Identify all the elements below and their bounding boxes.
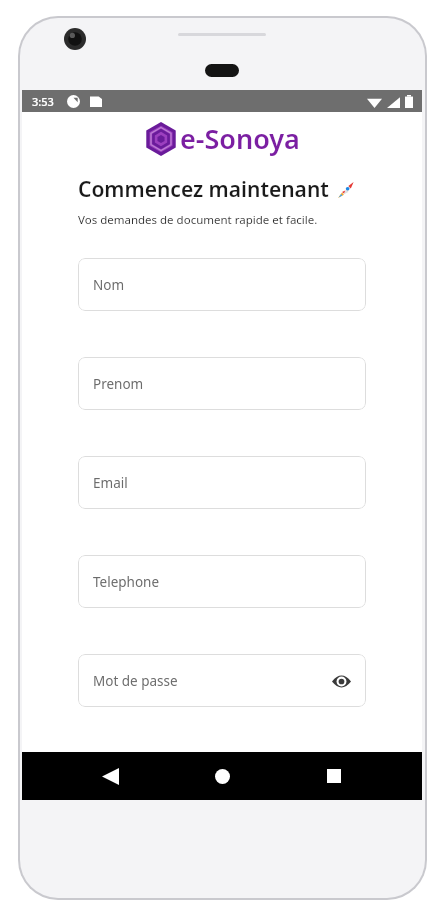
button[interactable]: Back — [86, 752, 134, 800]
button[interactable]: Afficher le mot de passe — [328, 668, 354, 694]
staticText: 3:53 — [32, 94, 54, 109]
staticText: Telephone — [93, 573, 160, 591]
button[interactable]: Prenom — [78, 357, 366, 410]
staticText: e-Sonoya — [180, 120, 300, 157]
button[interactable]: Email — [78, 456, 366, 509]
staticText: Email — [93, 474, 128, 492]
button[interactable]: Nom — [78, 258, 366, 311]
staticText: Prenom — [93, 375, 144, 393]
staticText: Vos demandes de document rapide et facil… — [78, 212, 422, 228]
staticText: Mot de passe — [93, 672, 178, 690]
button[interactable]: Recent apps — [310, 752, 358, 800]
button[interactable]: Mot de passe — [78, 654, 366, 707]
button[interactable]: Telephone — [78, 555, 366, 608]
staticText: Nom — [93, 276, 125, 294]
button[interactable]: Home — [198, 752, 246, 800]
staticText: Commencez maintenant — [78, 175, 329, 204]
